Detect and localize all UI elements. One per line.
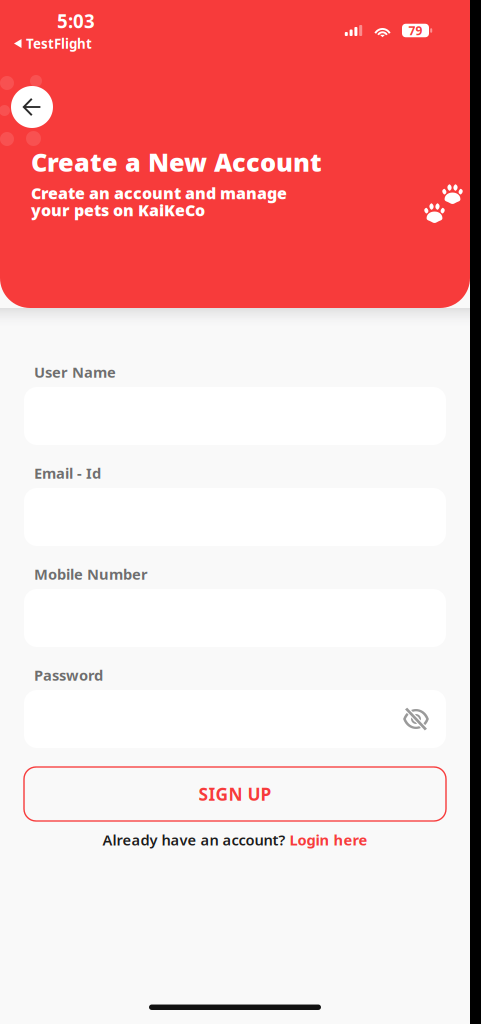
staticText: Email - Id [34, 463, 101, 483]
staticText: Password [34, 665, 103, 685]
staticText: SIGN UP [198, 782, 271, 805]
staticText: TestFlight [26, 35, 92, 52]
button[interactable]: SIGN UP [24, 767, 446, 821]
button[interactable] [24, 690, 446, 748]
button[interactable]: Show password [394, 697, 438, 741]
staticText: your pets on KaiKeCo [31, 199, 205, 221]
staticText: Create an account and manage [31, 182, 287, 204]
button[interactable]: Back [11, 86, 53, 128]
staticText: Create a New Account [31, 145, 322, 179]
staticText: 79 [408, 22, 422, 38]
button[interactable]: Login here [289, 830, 367, 849]
staticText: Login here [289, 830, 367, 849]
staticText: 5:03 [57, 9, 95, 33]
staticText: User Name [34, 362, 116, 382]
staticText: Mobile Number [34, 564, 148, 584]
staticText: Already have an account? [102, 830, 289, 849]
